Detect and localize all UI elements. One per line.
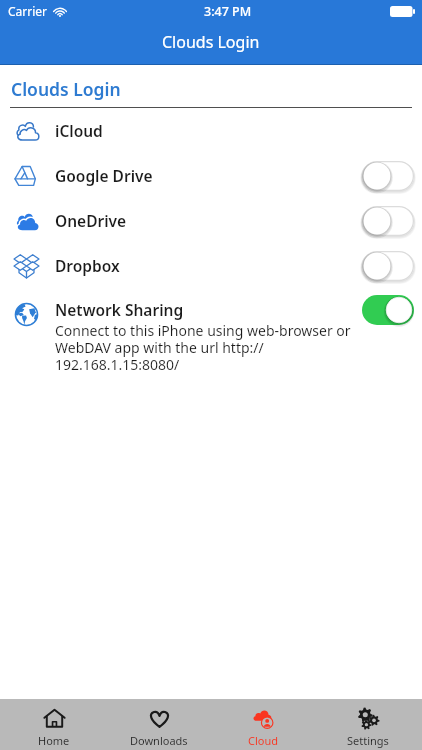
staticText: Settings [347,733,389,748]
button[interactable]: Downloads [109,699,209,750]
staticText: Google Drive [55,165,153,186]
button[interactable]: Dropbox [0,243,422,288]
staticText: iCloud [55,120,103,141]
staticText: Cloud [248,733,279,748]
button[interactable]: Cloud [213,699,313,750]
staticText: Clouds Login [162,31,260,53]
button[interactable]: Settings [318,699,418,750]
staticText: Network Sharing [55,299,184,320]
staticText: OneDrive [55,210,127,231]
button[interactable]: Google Drive [0,153,422,198]
button[interactable]: iCloud [0,108,422,153]
staticText: Connect to this iPhone using web-browser… [55,321,356,374]
button[interactable]: Google Drive switch, off [362,161,414,191]
staticText: 3:47 PM [204,3,252,20]
button[interactable]: OneDrive [0,198,422,243]
staticText: Dropbox [55,255,120,276]
staticText: Clouds Login [11,77,121,101]
button[interactable]: OneDrive switch, off [362,206,414,236]
button[interactable]: Home [4,699,104,750]
staticText: Carrier [8,3,48,19]
staticText: Home [38,733,70,748]
button[interactable]: Network Sharing switch, on [362,295,414,325]
staticText: Downloads [130,733,188,748]
button[interactable]: Dropbox switch, off [362,251,414,281]
button[interactable]: Network Sharing [0,288,422,374]
